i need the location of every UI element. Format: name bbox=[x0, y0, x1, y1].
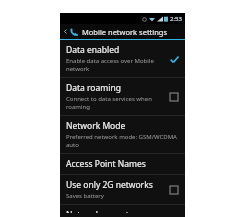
button[interactable]: Back bbox=[60, 24, 185, 39]
button[interactable]: Data enabled bbox=[60, 40, 185, 77]
staticText: Enable data access over Mobile network bbox=[66, 57, 164, 73]
button[interactable]: Use only 2G networks bbox=[60, 175, 185, 204]
staticText: Network Mode bbox=[66, 120, 126, 132]
staticText: Access Point Names bbox=[66, 158, 146, 170]
staticText: 2:53 bbox=[170, 15, 182, 23]
staticText: Data roaming bbox=[66, 82, 121, 94]
staticText: Network operators bbox=[66, 209, 142, 213]
button[interactable]: Unchecked bbox=[168, 184, 180, 196]
staticText: Use only 2G networks bbox=[66, 179, 153, 191]
button[interactable]: Data roaming bbox=[60, 78, 185, 115]
other: Back bbox=[63, 29, 68, 34]
button[interactable]: Checked bbox=[168, 53, 180, 65]
staticText: Connect to data services when roaming bbox=[66, 95, 164, 111]
button[interactable]: Network operators bbox=[60, 205, 185, 217]
staticText: Preferred network mode: GSM/WCDMA auto bbox=[66, 133, 180, 149]
staticText: Saves battery bbox=[66, 192, 104, 200]
button[interactable]: Access Point Names bbox=[60, 154, 185, 174]
staticText: Mobile network settings bbox=[82, 27, 168, 37]
button[interactable]: Unchecked bbox=[168, 91, 180, 103]
button[interactable]: Network Mode bbox=[60, 116, 185, 153]
staticText: Data enabled bbox=[66, 44, 120, 56]
